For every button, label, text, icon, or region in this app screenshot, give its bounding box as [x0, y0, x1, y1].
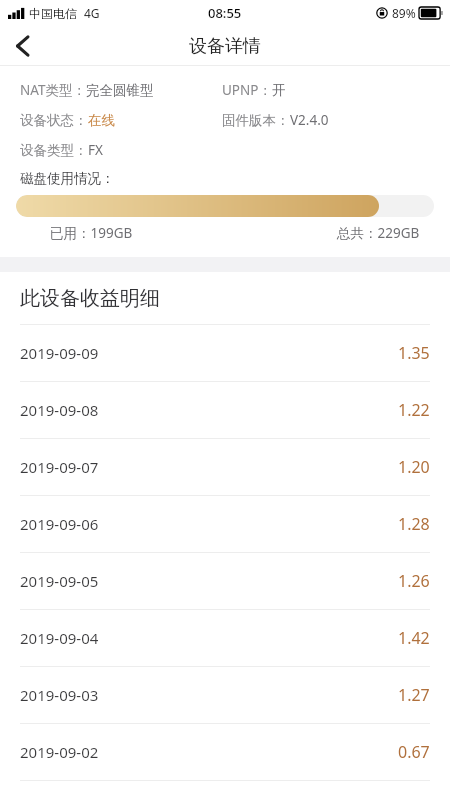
staticText: FX	[88, 141, 103, 159]
button[interactable]: 2019-09-07	[0, 439, 450, 495]
staticText: 2019-09-09	[20, 343, 99, 363]
staticText: 1.28	[398, 513, 430, 535]
staticText: NAT类型：	[20, 81, 86, 99]
staticText: 开	[272, 82, 286, 99]
staticText: V2.4.0	[290, 111, 329, 129]
staticText: 1.42	[398, 627, 430, 649]
staticText: 设备状态：	[20, 112, 88, 129]
staticText: 2019-09-07	[20, 457, 99, 477]
staticText: 设备详情	[189, 35, 261, 58]
staticText: 4G	[84, 5, 100, 21]
staticText: 08:55	[208, 4, 242, 22]
staticText: 已用：199GB	[50, 224, 133, 242]
staticText: 2019-09-03	[20, 685, 99, 705]
button[interactable]: 2019-09-06	[0, 496, 450, 552]
button[interactable]: 2019-09-02	[0, 724, 450, 780]
staticText: 在线	[88, 112, 115, 129]
button[interactable]: 2019-09-09	[0, 325, 450, 381]
button[interactable]: 2019-09-04	[0, 610, 450, 666]
staticText: 固件版本：	[222, 112, 290, 129]
staticText: 2019-09-06	[20, 514, 99, 534]
staticText: 1.27	[398, 684, 430, 706]
staticText: 2019-09-05	[20, 571, 99, 591]
staticText: 总共：229GB	[337, 224, 420, 242]
staticText: 完全圆锥型	[86, 82, 154, 99]
button[interactable]: 2019-09-03	[0, 667, 450, 723]
staticText: 中国电信	[29, 6, 77, 21]
button[interactable]: 2019-09-05	[0, 553, 450, 609]
staticText: 1.26	[398, 570, 430, 592]
staticText: UPNP：	[222, 81, 272, 99]
staticText: 2019-09-08	[20, 400, 99, 420]
staticText: 2019-09-04	[20, 628, 99, 648]
staticText: 磁盘使用情况：	[20, 170, 115, 187]
button[interactable]: 2019-09-08	[0, 382, 450, 438]
staticText: 1.22	[398, 399, 430, 421]
staticText: 此设备收益明细	[20, 286, 160, 311]
staticText: 1.35	[398, 342, 430, 364]
staticText: 89%	[392, 5, 416, 21]
staticText: 0.67	[398, 741, 430, 763]
staticText: 1.20	[398, 456, 430, 478]
button[interactable]: Back	[0, 26, 44, 66]
staticText: 2019-09-02	[20, 742, 99, 762]
staticText: 设备类型：	[20, 142, 88, 159]
